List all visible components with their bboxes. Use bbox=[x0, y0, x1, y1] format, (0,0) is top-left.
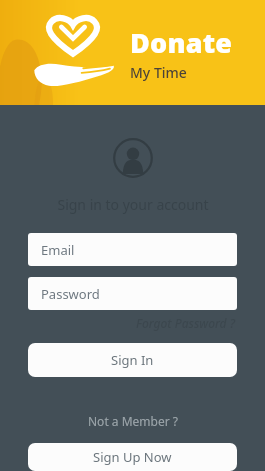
button[interactable]: Email bbox=[28, 233, 237, 266]
button[interactable]: Sign In bbox=[28, 343, 237, 377]
other: Account avatar bbox=[113, 138, 153, 178]
button[interactable]: Sign Up Now bbox=[28, 443, 237, 471]
staticText: Sign Up Now bbox=[93, 448, 172, 466]
staticText: Email bbox=[41, 241, 75, 259]
button[interactable]: Password bbox=[28, 277, 237, 310]
staticText: Sign in to your account bbox=[57, 195, 209, 214]
staticText: Sign In bbox=[111, 351, 154, 369]
staticText: Donate bbox=[130, 24, 233, 61]
staticText: Not a Member ? bbox=[88, 413, 178, 429]
staticText: Password bbox=[41, 285, 100, 303]
staticText: My Time bbox=[130, 63, 187, 82]
